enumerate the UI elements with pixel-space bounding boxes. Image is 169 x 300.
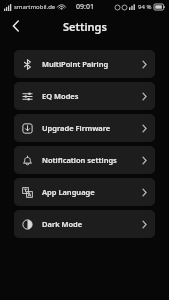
staticText: smartmobil.de	[14, 3, 56, 11]
staticText: EQ Modes	[42, 91, 79, 101]
staticText: MultiPoint Pairing	[42, 59, 109, 69]
button[interactable]: MultiPoint Pairing	[14, 50, 155, 78]
button[interactable]: Notification settings	[14, 146, 155, 174]
button[interactable]: EQ Modes	[14, 82, 155, 110]
staticText: Settings	[63, 19, 107, 34]
staticText: Notification settings	[42, 155, 117, 165]
staticText: Dark Mode	[42, 219, 83, 229]
staticText: App Language	[42, 187, 95, 197]
staticText: 09:01	[76, 2, 94, 12]
button[interactable]: Back	[7, 17, 25, 35]
staticText: Upgrade Firmware	[42, 123, 111, 133]
staticText: 94 %	[138, 3, 152, 11]
button[interactable]: Upgrade Firmware	[14, 114, 155, 142]
button[interactable]: Dark Mode	[14, 210, 155, 238]
button[interactable]: App Language	[14, 178, 155, 206]
